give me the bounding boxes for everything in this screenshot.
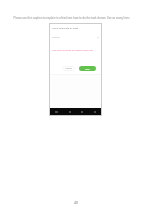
button[interactable]: Add (79, 66, 96, 71)
button[interactable]: Profile (90, 108, 99, 115)
staticText: Add a new slide or page (52, 26, 79, 29)
staticText: Please use this caption to explain in a … (13, 16, 130, 20)
button[interactable]: Search (65, 108, 74, 115)
staticText: Cancel (65, 67, 73, 70)
button[interactable]: Choose (52, 36, 99, 39)
staticText: 40 (74, 200, 78, 205)
staticText: Choose (52, 36, 60, 39)
button[interactable]: Cancel (62, 66, 75, 71)
button[interactable]: Home (52, 108, 61, 115)
staticText: Add (85, 67, 90, 70)
button[interactable]: Library (77, 108, 86, 115)
staticText: You must choose an option from the list … (52, 48, 96, 51)
